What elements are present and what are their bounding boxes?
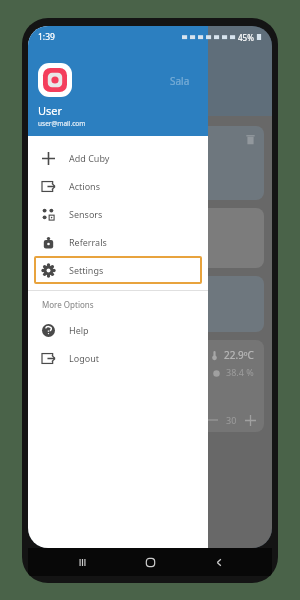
staticText: Logout <box>69 352 99 364</box>
staticText: Actions <box>69 180 100 192</box>
button[interactable]: Delete <box>36 126 264 200</box>
button[interactable]: Recents <box>67 548 97 576</box>
button[interactable]: Decrease <box>208 415 218 425</box>
button[interactable]: Sensors <box>34 200 202 228</box>
staticText: Cubies <box>182 71 208 82</box>
button[interactable]: Add Cuby <box>34 144 202 172</box>
button[interactable]: Increase <box>245 415 256 426</box>
staticText: User <box>38 103 63 118</box>
button[interactable]: Help <box>34 316 202 344</box>
staticText: 45% <box>238 32 254 43</box>
button[interactable]: Logout <box>34 344 202 372</box>
staticText: Sensors <box>69 208 103 220</box>
staticText: Sala <box>170 74 190 88</box>
button[interactable]: Settings <box>34 256 202 284</box>
staticText: Add Cuby <box>69 152 110 164</box>
staticText: 30 <box>226 414 237 426</box>
staticText: More Options <box>42 299 94 310</box>
button[interactable] <box>36 276 264 332</box>
button[interactable]: Home <box>135 548 165 576</box>
button[interactable]: OFFLINE <box>36 208 264 268</box>
button[interactable]: Referrals <box>34 228 202 256</box>
other: Delete <box>245 134 256 145</box>
staticText: 38.4 % <box>226 366 254 378</box>
button[interactable]: App icon <box>38 63 72 97</box>
staticText: 1:39 <box>38 31 55 43</box>
staticText: Settings <box>69 264 104 276</box>
button[interactable]: Actions <box>34 172 202 200</box>
staticText: 22.9ºC <box>224 348 254 362</box>
staticText: user@mail.com <box>38 119 86 128</box>
button[interactable]: 22.9ºC <box>36 340 264 432</box>
staticText: Referrals <box>69 236 107 248</box>
staticText: Help <box>69 324 89 336</box>
button[interactable]: Back <box>204 548 234 576</box>
